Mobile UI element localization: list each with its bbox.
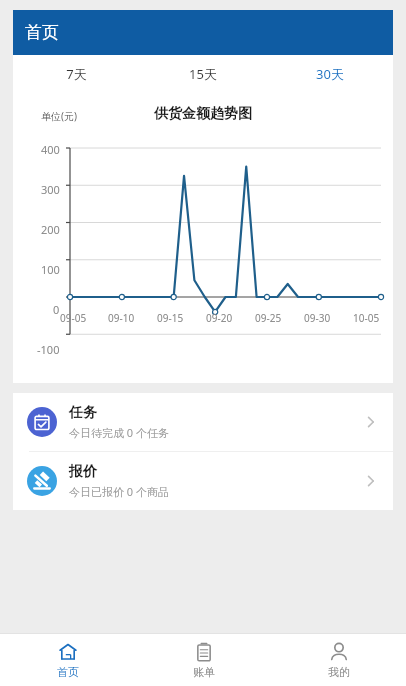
staticText: 账单 bbox=[193, 665, 215, 679]
staticText: 首页 bbox=[25, 22, 59, 43]
staticText: 供货金额趋势图 bbox=[154, 105, 252, 123]
staticText: 09-20 bbox=[206, 311, 233, 325]
staticText: 今日待完成 0 个任务 bbox=[69, 425, 170, 440]
button[interactable]: 30天 bbox=[266, 55, 393, 93]
staticText: 09-10 bbox=[108, 311, 135, 325]
staticText: 今日已报价 0 个商品 bbox=[69, 484, 170, 499]
button[interactable]: 7天 bbox=[13, 55, 139, 93]
staticText: 200 bbox=[41, 222, 60, 237]
staticText: 400 bbox=[41, 142, 60, 157]
staticText: 单位(元) bbox=[41, 109, 77, 123]
staticText: 100 bbox=[41, 262, 60, 277]
staticText: 300 bbox=[41, 182, 60, 197]
staticText: 7天 bbox=[66, 65, 87, 83]
staticText: 报价 bbox=[69, 463, 97, 481]
button[interactable]: 15天 bbox=[139, 55, 266, 93]
staticText: 我的 bbox=[328, 665, 350, 679]
button[interactable]: 任务 bbox=[13, 393, 393, 451]
staticText: 10-05 bbox=[353, 311, 380, 325]
button[interactable]: 账单 bbox=[136, 634, 271, 686]
staticText: 0 bbox=[53, 302, 60, 317]
staticText: 首页 bbox=[57, 665, 79, 679]
staticText: 09-15 bbox=[157, 311, 184, 325]
button[interactable]: 首页 bbox=[0, 634, 136, 686]
staticText: 30天 bbox=[316, 65, 344, 83]
button[interactable]: 我的 bbox=[271, 634, 406, 686]
button[interactable]: 报价 bbox=[13, 452, 393, 510]
staticText: -100 bbox=[37, 342, 60, 357]
staticText: 09-25 bbox=[255, 311, 282, 325]
staticText: 任务 bbox=[69, 404, 97, 422]
staticText: 09-30 bbox=[304, 311, 331, 325]
staticText: 09-05 bbox=[60, 311, 87, 325]
staticText: 15天 bbox=[189, 65, 217, 83]
